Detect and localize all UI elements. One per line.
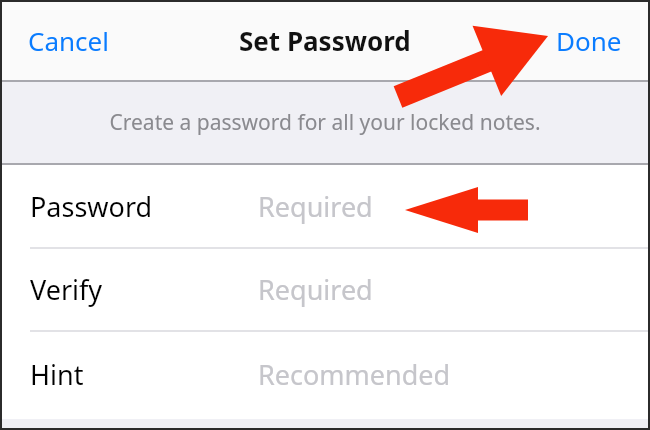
staticText: Create a password for all your locked no…	[109, 108, 541, 137]
staticText: Set Password	[239, 23, 411, 58]
staticText: Password	[30, 188, 153, 225]
button[interactable]: Done	[542, 13, 648, 68]
staticText: Required	[258, 188, 373, 225]
staticText: Recommended	[258, 356, 451, 393]
button[interactable]: Password	[2, 165, 648, 247]
button[interactable]: Cancel	[2, 13, 123, 68]
staticText: Hint	[30, 356, 84, 393]
button[interactable]: Verify	[2, 249, 648, 330]
staticText: Required	[258, 271, 373, 308]
staticText: Cancel	[28, 23, 109, 58]
staticText: Done	[556, 23, 622, 58]
button[interactable]: Hint	[2, 332, 648, 416]
staticText: Verify	[30, 271, 103, 308]
